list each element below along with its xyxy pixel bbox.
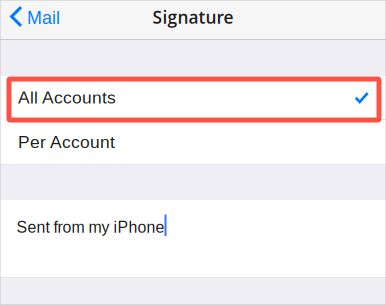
button[interactable]: Per Account — [0, 120, 386, 164]
staticText: Signature — [152, 5, 233, 29]
staticText: Mail — [27, 8, 60, 28]
staticText: All Accounts — [18, 88, 116, 107]
staticText: Per Account — [18, 132, 115, 152]
staticText: Sent from my iPhone — [16, 218, 164, 236]
button[interactable]: Sent from my iPhone — [0, 199, 386, 277]
button[interactable]: All Accounts — [0, 75, 386, 119]
button[interactable]: Mail — [0, 5, 68, 34]
